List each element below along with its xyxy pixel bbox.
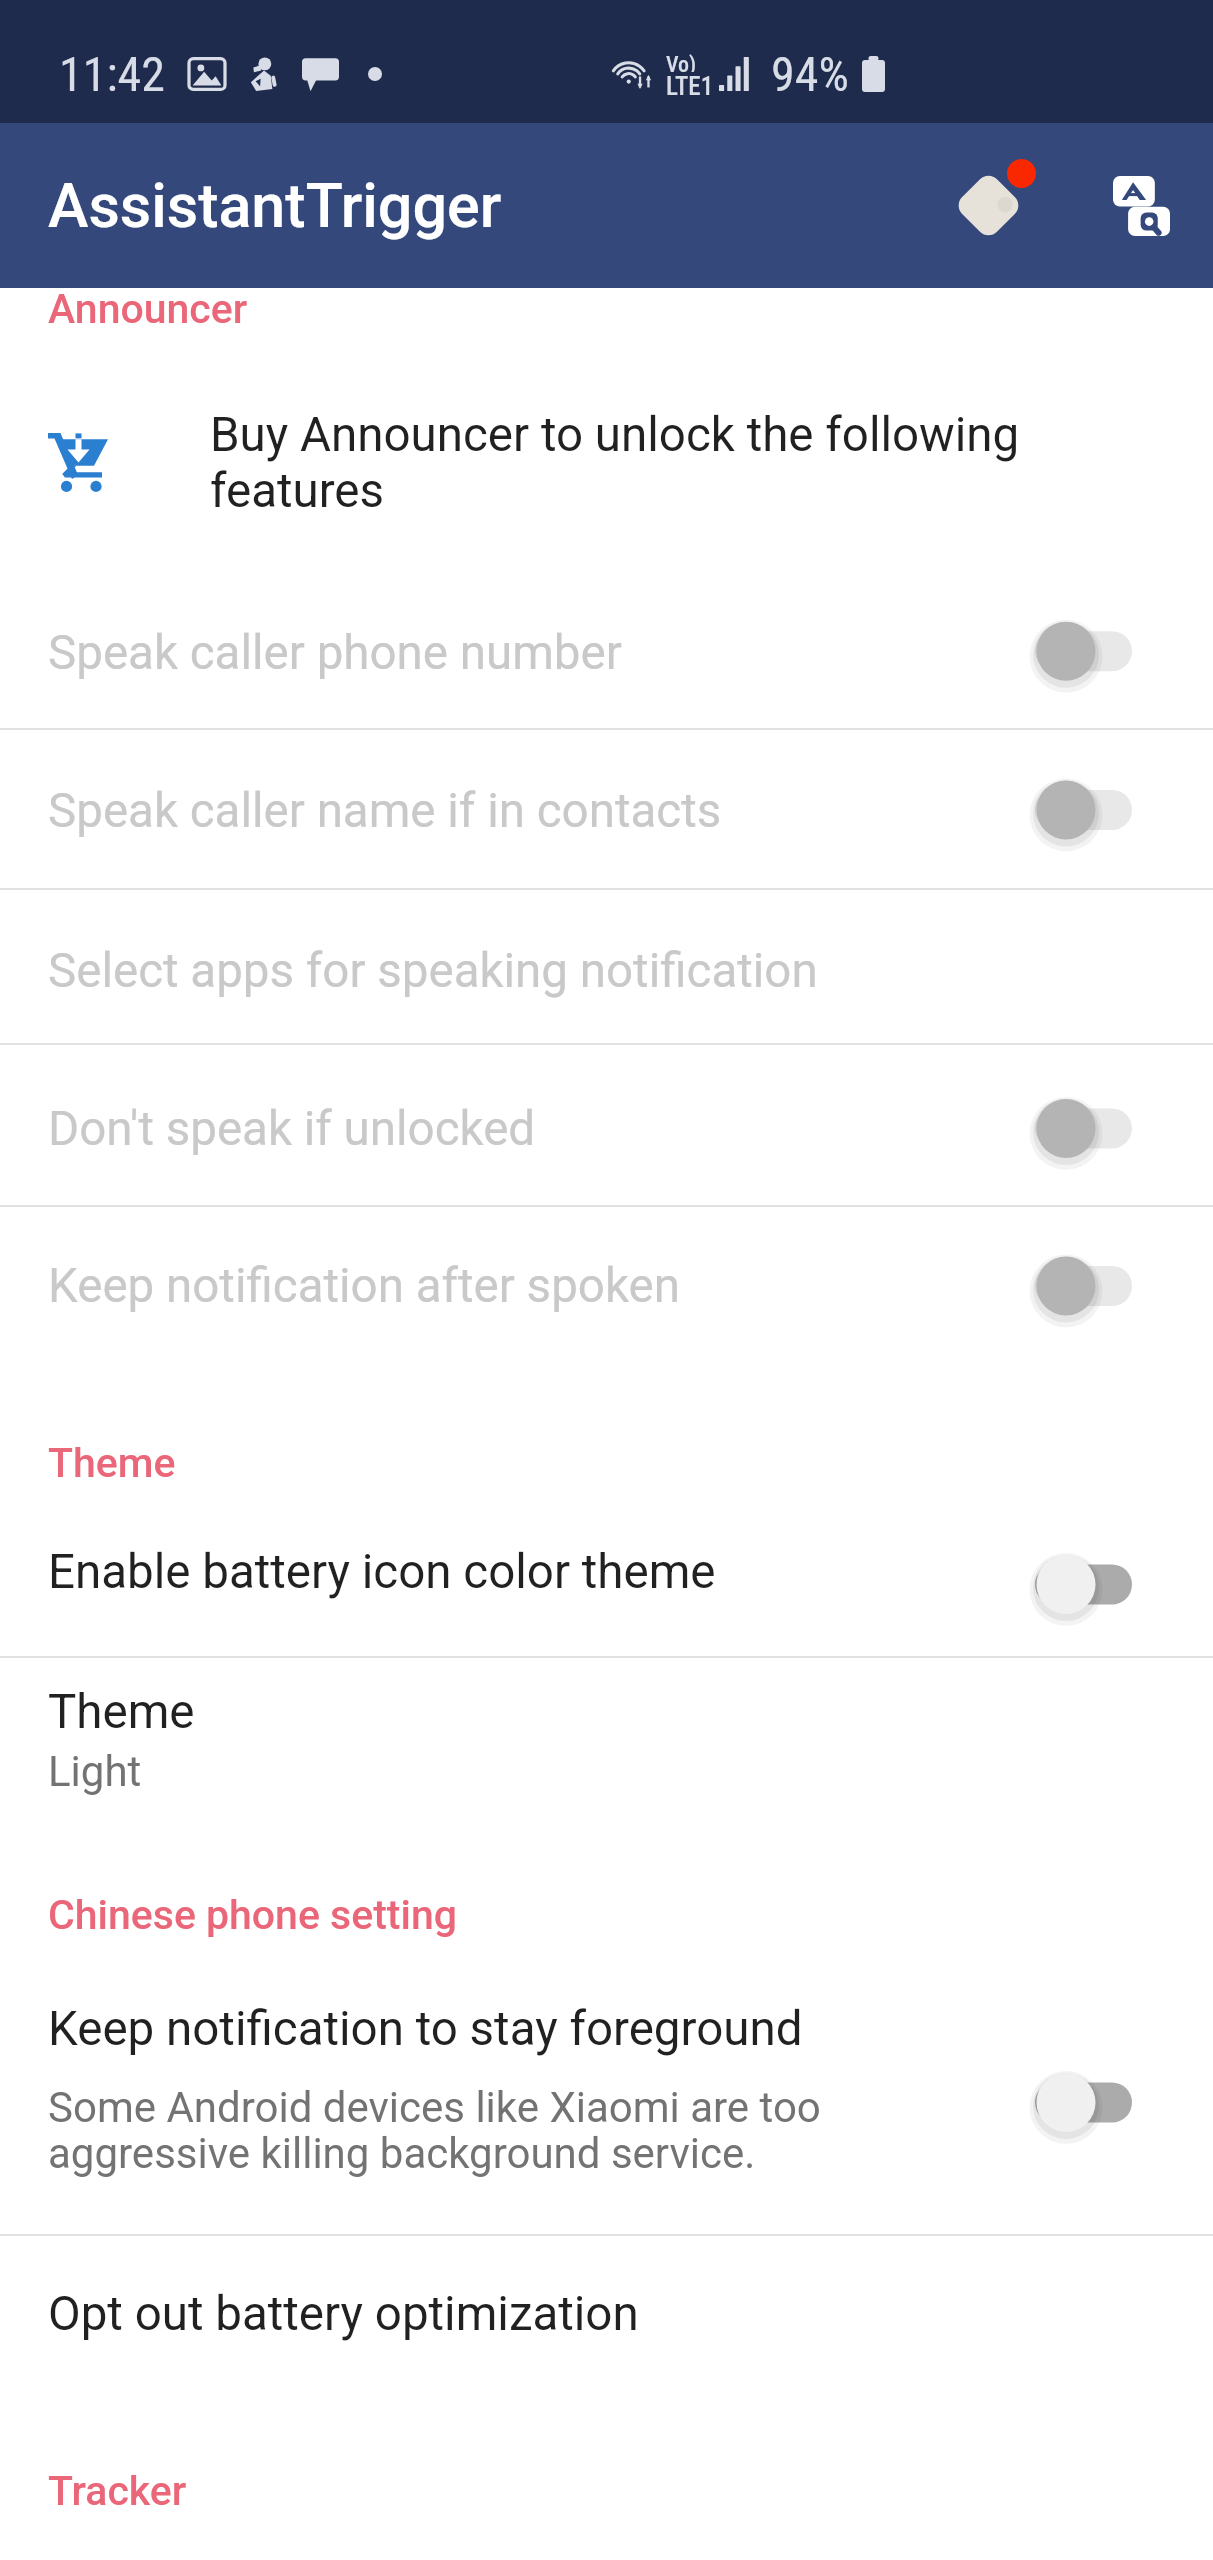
staticText: Vo) [666, 52, 697, 72]
button[interactable]: Toggle setting [1020, 608, 1145, 698]
staticText: Some Android devices like Xiaomi are too… [48, 2083, 821, 2179]
button[interactable]: Opt out battery optimization [0, 2236, 1213, 2391]
button[interactable]: Speak caller name if in contacts [0, 730, 1213, 888]
button[interactable]: Speak caller phone number [0, 578, 1213, 728]
button[interactable]: Select apps for speaking notification [0, 890, 1213, 1043]
button[interactable]: Keep notification to stay foreground [0, 1939, 1213, 2234]
staticText: 94% [771, 46, 849, 102]
staticText: Keep notification to stay foreground [48, 2001, 803, 2057]
staticText: Opt out battery optimization [48, 2286, 1145, 2342]
staticText: Announcer [48, 285, 1213, 333]
staticText: AssistantTrigger [48, 170, 502, 241]
button[interactable]: Keep notification after spoken [0, 1207, 1213, 1365]
button[interactable]: Toggle setting [1020, 1527, 1145, 1617]
button[interactable]: Theme [0, 1658, 1213, 1891]
staticText: Speak caller name if in contacts [48, 783, 1020, 839]
staticText: Chinese phone setting [48, 1891, 1213, 1939]
staticText: Theme [48, 1439, 1213, 1487]
staticText: 11:42 [59, 46, 165, 102]
staticText: Speak caller phone number [48, 625, 1020, 681]
button[interactable]: Toggle setting [1020, 1084, 1145, 1174]
button[interactable]: Enable battery icon color theme [0, 1487, 1213, 1656]
staticText: Tracker [48, 2467, 1213, 2515]
button[interactable]: Tracker device [933, 151, 1043, 261]
staticText: LTE1 [666, 72, 712, 96]
button[interactable]: Toggle setting [1020, 1241, 1145, 1331]
button[interactable]: Toggle setting [1020, 2045, 1145, 2135]
button[interactable]: Don't speak if unlocked [0, 1045, 1213, 1205]
staticText: Buy Announcer to unlock the following fe… [210, 407, 1020, 519]
button[interactable]: Buy Announcer to unlock the following fe… [0, 333, 1213, 578]
button[interactable]: Toggle setting [1020, 766, 1145, 856]
button[interactable]: Translate [1086, 151, 1196, 261]
staticText: Select apps for speaking notification [48, 943, 1145, 999]
staticText: Don't speak if unlocked [48, 1101, 1020, 1157]
staticText: Enable battery icon color theme [48, 1544, 1020, 1600]
staticText: Keep notification after spoken [48, 1258, 1020, 1314]
staticText: Theme [48, 1684, 195, 1740]
staticText: Light [48, 1747, 142, 1796]
